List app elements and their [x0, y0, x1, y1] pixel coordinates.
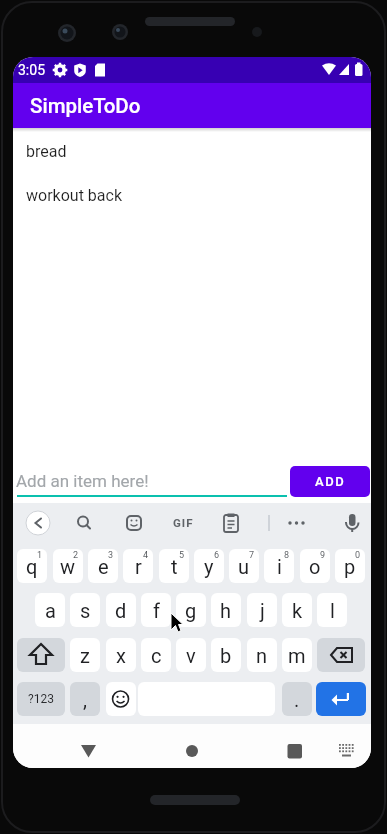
button[interactable]: k [282, 593, 312, 627]
staticText: 3:05 [18, 62, 45, 78]
button[interactable]: Add an item here! [16, 471, 149, 491]
button[interactable]: , [70, 682, 100, 716]
button[interactable]: y [194, 549, 224, 583]
button[interactable]: . [282, 682, 312, 716]
staticText: o [309, 555, 321, 578]
staticText: 7 [249, 550, 255, 561]
button[interactable]: x [106, 638, 136, 672]
staticText: n [256, 644, 268, 667]
staticText: ADD [315, 474, 346, 489]
staticText: m [288, 644, 306, 667]
staticText: 8 [284, 550, 290, 561]
button[interactable]: f [141, 593, 171, 627]
button[interactable]: ?123 [17, 682, 65, 716]
button[interactable]: u [229, 549, 259, 583]
button[interactable]: ADD [290, 466, 370, 497]
staticText: 0 [355, 550, 361, 561]
button[interactable] [252, 724, 371, 768]
staticText: q [26, 555, 38, 578]
staticText: 6 [214, 550, 220, 561]
button[interactable]: t [159, 549, 189, 583]
staticText: c [151, 644, 162, 667]
button[interactable]: g [176, 593, 206, 627]
staticText: l [330, 599, 335, 622]
staticText: 9 [320, 550, 326, 561]
staticText: d [115, 599, 127, 622]
button[interactable] [133, 724, 252, 768]
button[interactable]: h [211, 593, 241, 627]
staticText: . [294, 688, 300, 711]
button[interactable]: e [88, 549, 118, 583]
staticText: z [80, 644, 90, 667]
button[interactable]: m [282, 638, 312, 672]
staticText: b [220, 644, 232, 667]
button[interactable]: j [247, 593, 277, 627]
button[interactable]: a [35, 593, 65, 627]
staticText: g [185, 599, 197, 622]
button[interactable]: workout back [13, 173, 371, 217]
button[interactable] [316, 682, 366, 716]
button[interactable]: p [335, 549, 365, 583]
button[interactable]: l [317, 593, 347, 627]
staticText: k [292, 599, 303, 622]
button[interactable] [106, 682, 136, 716]
button[interactable]: c [141, 638, 171, 672]
staticText: y [204, 555, 214, 578]
staticText: f [153, 599, 160, 622]
staticText: , [83, 688, 87, 711]
staticText: workout back [26, 186, 122, 205]
staticText: p [344, 555, 356, 578]
button[interactable] [13, 724, 133, 768]
button[interactable]: w [53, 549, 83, 583]
button[interactable]: s [70, 593, 100, 627]
staticText: t [171, 555, 178, 578]
staticText: bread [26, 142, 67, 161]
button[interactable]: q [17, 549, 47, 583]
button[interactable] [17, 638, 65, 672]
staticText: v [186, 644, 196, 667]
staticText: ?123 [28, 692, 54, 706]
button[interactable]: z [70, 638, 100, 672]
staticText: w [60, 555, 76, 578]
button[interactable]: r [123, 549, 153, 583]
button[interactable]: GIF [173, 516, 194, 529]
staticText: 3 [108, 550, 114, 561]
staticText: 5 [179, 550, 185, 561]
staticText: s [80, 599, 91, 622]
button[interactable]: bread [13, 129, 371, 173]
button[interactable]: b [211, 638, 241, 672]
button[interactable]: v [176, 638, 206, 672]
staticText: x [116, 644, 126, 667]
staticText: j [260, 599, 265, 622]
staticText: SimpleToDo [30, 94, 141, 118]
staticText: 1 [37, 550, 43, 561]
staticText: 2 [73, 550, 79, 561]
staticText: GIF [173, 516, 194, 529]
staticText: a [45, 599, 56, 622]
button[interactable]: i [264, 549, 294, 583]
staticText: 4 [143, 550, 149, 561]
button[interactable]: n [247, 638, 277, 672]
button[interactable]: d [106, 593, 136, 627]
staticText: u [238, 555, 250, 578]
staticText: i [277, 555, 282, 578]
staticText: e [98, 555, 109, 578]
button[interactable] [317, 638, 365, 672]
staticText: r [135, 555, 142, 578]
staticText: h [220, 599, 232, 622]
button[interactable]: o [300, 549, 330, 583]
